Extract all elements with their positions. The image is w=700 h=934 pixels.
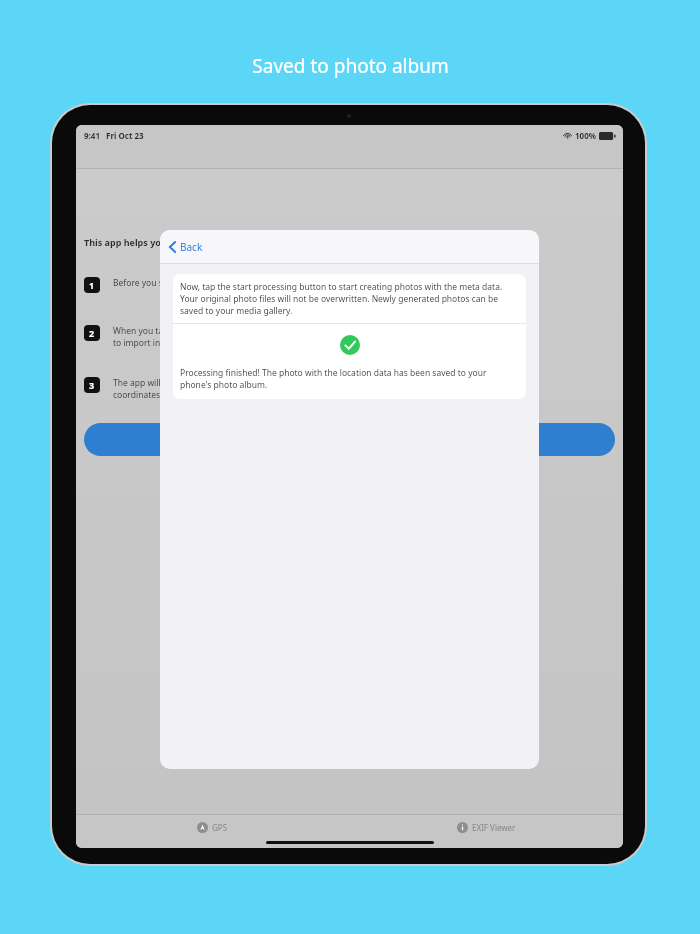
staticText: Processing finished! The photo with the … [180,367,519,391]
staticText: The app will then create copies of the s… [113,377,396,401]
staticText: When you tap the button below, a file pi… [113,325,421,349]
staticText: 9:41 [84,130,100,141]
button[interactable]: GPS [193,820,232,835]
staticText: EXIF Viewer [472,822,516,833]
staticText: Now, tap the start processing button to … [180,281,519,317]
button[interactable]: Back [166,237,206,257]
staticText: This app helps you to add location data … [84,236,331,248]
staticText: Before you start, make sure the photos a… [113,277,371,289]
staticText: 2 [89,327,95,339]
other: GPS [197,822,208,833]
button[interactable]: EXIF Viewer [453,820,520,835]
other: EXIF Viewer [457,822,468,833]
staticText: 100% [575,130,596,141]
staticText: GPS [212,822,228,833]
staticText: 1 [89,279,95,291]
staticText: Fri Oct 23 [106,130,144,141]
staticText: 3 [89,379,95,391]
staticText: Back [180,240,203,254]
button[interactable]: Select photos [84,423,615,456]
staticText: Saved to photo album [252,53,449,79]
